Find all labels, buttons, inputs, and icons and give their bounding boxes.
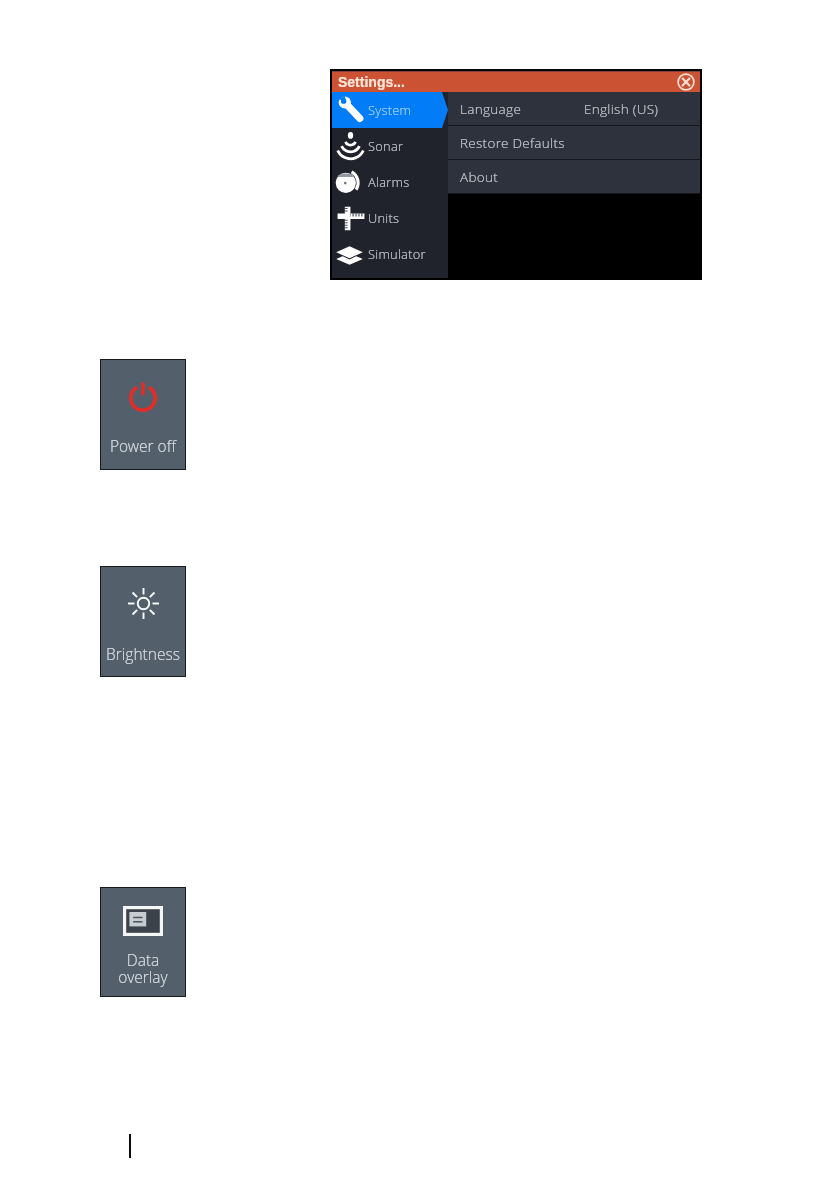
staticText: Settings...	[338, 74, 405, 90]
button[interactable]: Alarms	[331, 164, 448, 200]
button[interactable]: Restore Defaults	[448, 126, 701, 159]
staticText: Units	[368, 209, 400, 227]
button[interactable]: System	[331, 92, 448, 128]
staticText: Power off	[101, 435, 185, 456]
button[interactable]: Language	[448, 92, 701, 125]
staticText: Alarms	[368, 173, 410, 191]
staticText: System	[368, 101, 412, 119]
button[interactable]: About	[448, 160, 701, 193]
staticText: Sonar	[368, 137, 404, 155]
staticText: Language	[460, 100, 522, 118]
staticText: About	[460, 168, 499, 186]
button[interactable]: Units	[331, 200, 448, 236]
button[interactable]: Close settings	[677, 73, 695, 91]
button[interactable]: Data overlay	[101, 888, 185, 996]
button[interactable]: Brightness	[101, 567, 185, 676]
staticText: English (US)	[584, 100, 659, 118]
button[interactable]: Sonar	[331, 128, 448, 164]
button[interactable]: Simulator	[331, 236, 448, 272]
button[interactable]: Power off	[101, 360, 185, 469]
staticText: Data overlay	[101, 949, 185, 988]
staticText: Restore Defaults	[460, 134, 565, 152]
staticText: Brightness	[101, 643, 185, 664]
staticText: Simulator	[368, 245, 426, 263]
